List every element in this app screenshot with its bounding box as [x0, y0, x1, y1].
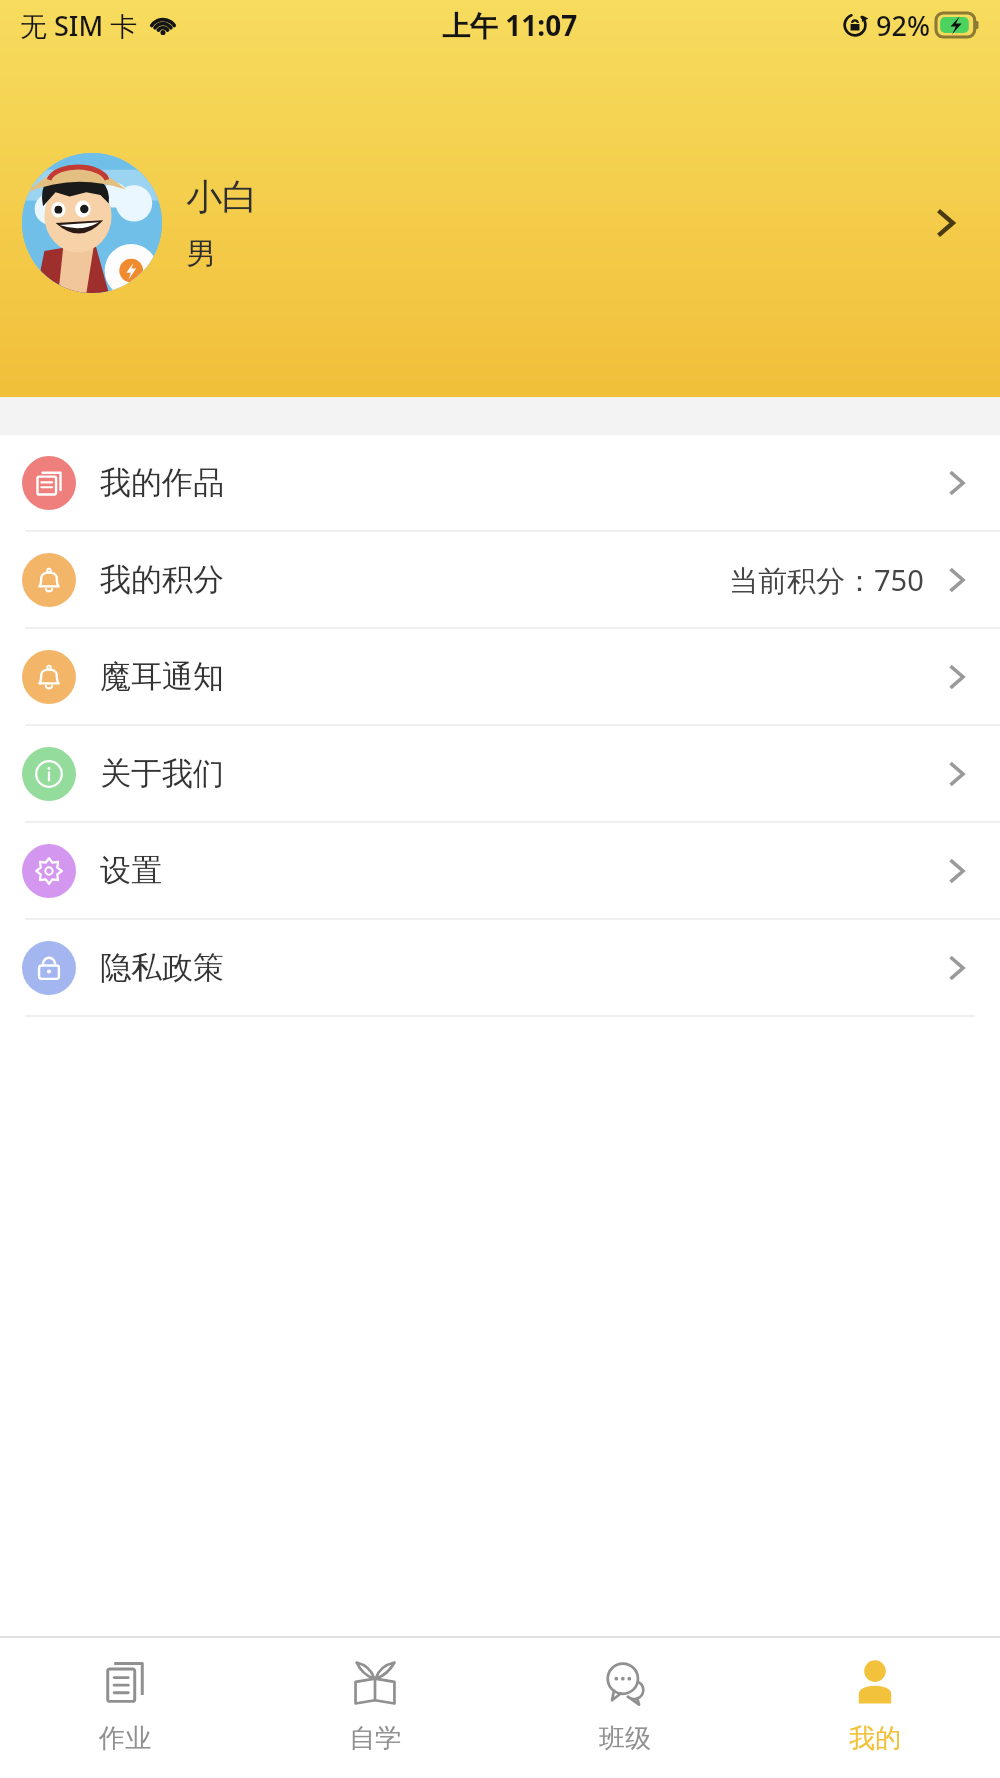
staticText: 设置	[100, 851, 162, 890]
button[interactable]: 我的积分	[0, 532, 1000, 627]
staticText: 作业	[99, 1722, 151, 1755]
staticText: 班级	[599, 1722, 651, 1755]
staticText: 无 SIM 卡	[20, 7, 138, 44]
staticText: 关于我们	[100, 754, 224, 793]
button[interactable]: 关于我们	[0, 726, 1000, 821]
staticText: 我的	[849, 1722, 901, 1755]
button[interactable]: 设置	[0, 823, 1000, 918]
staticText: 自学	[349, 1722, 401, 1755]
button[interactable]: 我的	[750, 1638, 1000, 1778]
button[interactable]: 自学	[250, 1638, 500, 1778]
staticText: 我的积分	[100, 560, 224, 599]
button[interactable]: 隐私政策	[0, 920, 1000, 1015]
staticText: 当前积分：750	[729, 560, 924, 600]
button[interactable]: 班级	[500, 1638, 750, 1778]
button[interactable]: 作业	[0, 1638, 250, 1778]
staticText: 男	[186, 235, 216, 273]
button[interactable]: 小白	[0, 148, 1000, 298]
staticText: 隐私政策	[100, 948, 224, 987]
staticText: 小白	[186, 174, 258, 219]
staticText: 魔耳通知	[100, 657, 224, 696]
staticText: 92%	[876, 7, 930, 44]
button[interactable]: 我的作品	[0, 435, 1000, 530]
staticText: 上午 11:07	[442, 6, 578, 44]
staticText: 我的作品	[100, 463, 224, 502]
button[interactable]: 魔耳通知	[0, 629, 1000, 724]
